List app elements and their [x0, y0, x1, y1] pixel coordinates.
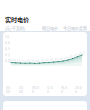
staticText: 0.5: [5, 47, 10, 51]
staticText: 1.0: [5, 35, 9, 39]
staticText: 今日电价走势: [63, 26, 87, 32]
staticText: 0.0: [5, 59, 10, 63]
staticText: 0.3: [5, 53, 10, 57]
staticText: 08:00: [32, 86, 39, 94]
staticText: 0.8: [5, 41, 10, 45]
staticText: 0.2: [28, 59, 33, 62]
staticText: 0.2: [14, 59, 19, 62]
staticText: 0.2: [23, 59, 28, 62]
staticText: 0.6: [66, 56, 71, 59]
staticText: 00:00: [6, 86, 11, 94]
staticText: 0.2: [9, 58, 14, 62]
staticText: 0.4: [52, 58, 57, 61]
staticText: 0.2: [33, 59, 38, 62]
staticText: 0.5: [61, 57, 66, 60]
staticText: 04:00: [19, 86, 24, 94]
staticText: 0.3: [47, 58, 52, 62]
staticText: 20:00: [75, 86, 82, 94]
staticText: 0.3: [37, 59, 42, 62]
staticText: 0.9: [80, 51, 85, 54]
staticText: 实时电价: [5, 15, 29, 24]
staticText: 16:00: [61, 86, 67, 94]
staticText: 12:00: [47, 86, 53, 94]
staticText: 0.7: [70, 55, 75, 58]
staticText: 0.4: [56, 58, 61, 61]
staticText: 0.3: [42, 59, 47, 62]
staticText: (元/千瓦时): [5, 26, 25, 32]
staticText: 明日电价: [42, 26, 58, 32]
staticText: 0.2: [18, 59, 23, 62]
staticText: 0.8: [75, 53, 80, 56]
